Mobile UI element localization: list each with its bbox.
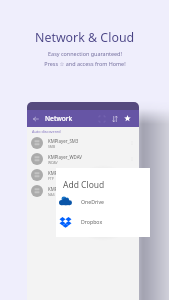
staticText: Dropbox	[81, 218, 103, 225]
button[interactable]: KMPlayer_FTP	[27, 167, 139, 183]
staticText: FTP	[48, 176, 54, 181]
button[interactable]: Dropbox	[56, 214, 150, 228]
staticText: Add Cloud	[63, 179, 105, 191]
staticText: KMPlayer_FTP	[48, 170, 77, 176]
staticText: Press ☆ and access from Home!	[44, 60, 126, 67]
button[interactable]: KMPlayer_WDAV	[27, 151, 139, 167]
button[interactable]: Cast	[97, 114, 106, 123]
button[interactable]: Favorite	[123, 114, 132, 123]
staticText: KMPlayer_WDAV	[48, 154, 82, 160]
button[interactable]: Back	[31, 114, 40, 123]
staticText: NAS	[48, 192, 55, 197]
staticText: WDAV	[48, 160, 58, 165]
staticText: OneDrive	[81, 198, 105, 205]
button[interactable]: KMPlayer_SM3	[27, 135, 139, 151]
button[interactable]: KMPlayer_NAS	[27, 183, 139, 199]
staticText: Easy connection guaranteed!	[48, 50, 122, 57]
staticText: KMPlayer_SM3	[48, 138, 79, 144]
staticText: Auto discovered	[32, 129, 61, 134]
staticText: Network & Cloud	[35, 29, 135, 46]
staticText: KMPlayer_NAS	[48, 186, 78, 192]
staticText: Network	[45, 114, 73, 123]
button[interactable]: OneDrive	[56, 194, 150, 208]
staticText: SMB	[48, 144, 56, 149]
button[interactable]: Sort	[110, 114, 119, 123]
